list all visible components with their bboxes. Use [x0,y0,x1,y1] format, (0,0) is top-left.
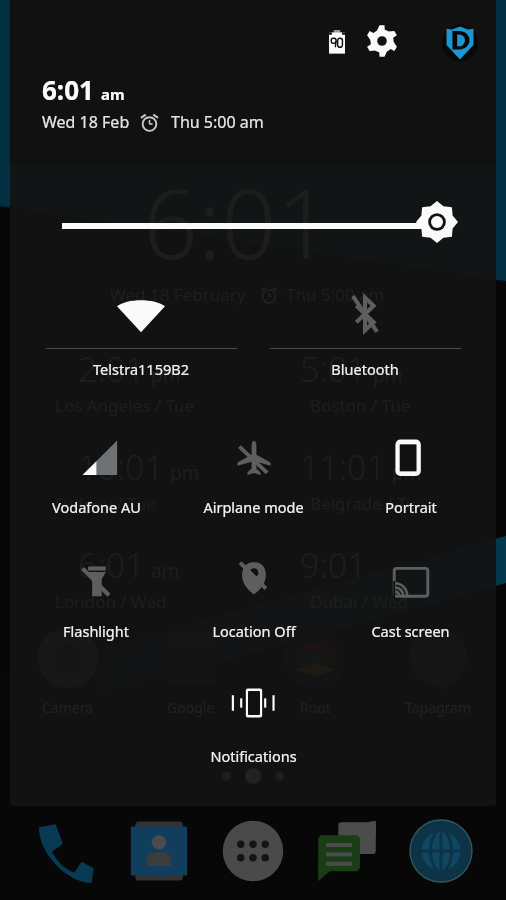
button[interactable]: Notifications [175,679,332,766]
button[interactable]: Settings [361,20,403,62]
staticText: Airplane mode [203,497,304,517]
staticText: Vodafone AU [52,497,141,517]
staticText: 9:01 [300,542,367,588]
staticText: 6:01 [42,72,94,107]
staticText: Location Off [212,621,296,641]
button[interactable]: Battery 90 percent [318,24,356,62]
staticText: am [101,84,125,104]
staticText: pm [392,460,422,486]
staticText: pm [373,362,403,388]
staticText: Thu 5:00 am [286,283,385,306]
staticText: Sydney / Tue [55,492,156,515]
staticText: Dubai / Wed [310,590,408,613]
staticText: Notifications [210,746,297,766]
button[interactable]: Telstra1159B2 [35,290,247,379]
staticText: London / Wed [55,590,167,613]
button[interactable]: Security [435,18,485,68]
staticText: Boston / Tue [310,394,411,417]
button[interactable]: Portrait [332,430,489,517]
staticText: 6:01 [78,542,145,588]
staticText: Telstra1159B2 [93,359,189,379]
button[interactable]: Airplane mode [175,430,332,517]
staticText: Portrait [385,497,437,517]
staticText: 10:01 [78,444,164,490]
staticText: Belgrade / Tue [310,492,426,515]
staticText: am [151,558,180,584]
staticText: Tapagram [405,698,472,717]
staticText: Thu 5:00 am [171,111,264,133]
staticText: Los Angeles / Tue [55,394,195,417]
staticText: Flashlight [63,621,129,641]
staticText: 5:01 [300,346,367,392]
button[interactable]: Flashlight [17,554,175,641]
staticText: Bluetooth [331,359,399,379]
staticText: Camera [42,698,94,717]
staticText: Google [167,698,215,717]
button[interactable]: Contacts [123,815,195,887]
button[interactable]: Brightness [416,201,458,243]
button[interactable]: Bluetooth [259,290,471,379]
button[interactable]: All apps [217,815,289,887]
button[interactable]: Browser [405,815,477,887]
button[interactable]: Location Off [175,554,332,641]
staticText: Wed 18 Feb [42,111,130,133]
button[interactable]: Messaging [311,815,383,887]
staticText: 6:01 [143,156,331,287]
staticText: Root [300,698,331,717]
staticText: Cast screen [371,621,450,641]
button[interactable]: Vodafone AU [17,430,175,517]
staticText: Wed 18 February [110,283,246,306]
staticText: 2:01 [78,346,145,392]
staticText: pm [151,362,181,388]
button[interactable]: Phone [29,815,101,887]
button[interactable]: Cast screen [332,554,489,641]
staticText: pm [170,460,200,486]
